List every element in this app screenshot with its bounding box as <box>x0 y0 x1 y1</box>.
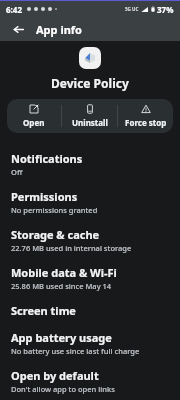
staticText: 37% <box>157 4 174 15</box>
staticText: Mobile data & Wi-Fi <box>11 265 117 280</box>
button[interactable]: Back <box>8 19 28 39</box>
staticText: App battery usage <box>11 330 112 345</box>
staticText: No battery use since last full charge <box>11 346 140 356</box>
staticText: Uninstall <box>72 117 108 128</box>
button[interactable]: Screen time <box>0 297 180 324</box>
staticText: 22.76 MB used in internal storage <box>11 243 132 253</box>
staticText: 5G <box>125 6 131 12</box>
staticText: 6:42 <box>6 4 22 15</box>
staticText: Force stop <box>125 117 167 128</box>
staticText: 25.86 MB used since May 14 <box>11 281 112 291</box>
button[interactable]: Storage & cache <box>0 221 180 259</box>
staticText: Notifications <box>11 151 83 166</box>
staticText: Screen time <box>11 303 76 318</box>
staticText: Device Policy <box>51 75 129 91</box>
staticText: Open <box>23 117 45 128</box>
button[interactable]: App battery usage <box>0 324 180 362</box>
button[interactable]: Force stop <box>118 99 173 133</box>
button[interactable]: Mobile data & Wi-Fi <box>0 259 180 297</box>
button[interactable]: Open by default <box>0 362 180 400</box>
button[interactable]: Open <box>7 99 61 133</box>
staticText: Open by default <box>11 368 99 383</box>
staticText: Don't allow app to open links <box>11 384 115 394</box>
button[interactable]: Uninstall <box>62 99 117 133</box>
staticText: App info <box>36 22 82 37</box>
staticText: Off <box>11 167 23 177</box>
staticText: Storage & cache <box>11 227 100 242</box>
staticText: No permissions granted <box>11 205 98 215</box>
staticText: Permissions <box>11 189 78 204</box>
button[interactable]: Permissions <box>0 183 180 221</box>
staticText: UC <box>132 6 139 12</box>
button[interactable]: Notifications <box>0 145 180 183</box>
